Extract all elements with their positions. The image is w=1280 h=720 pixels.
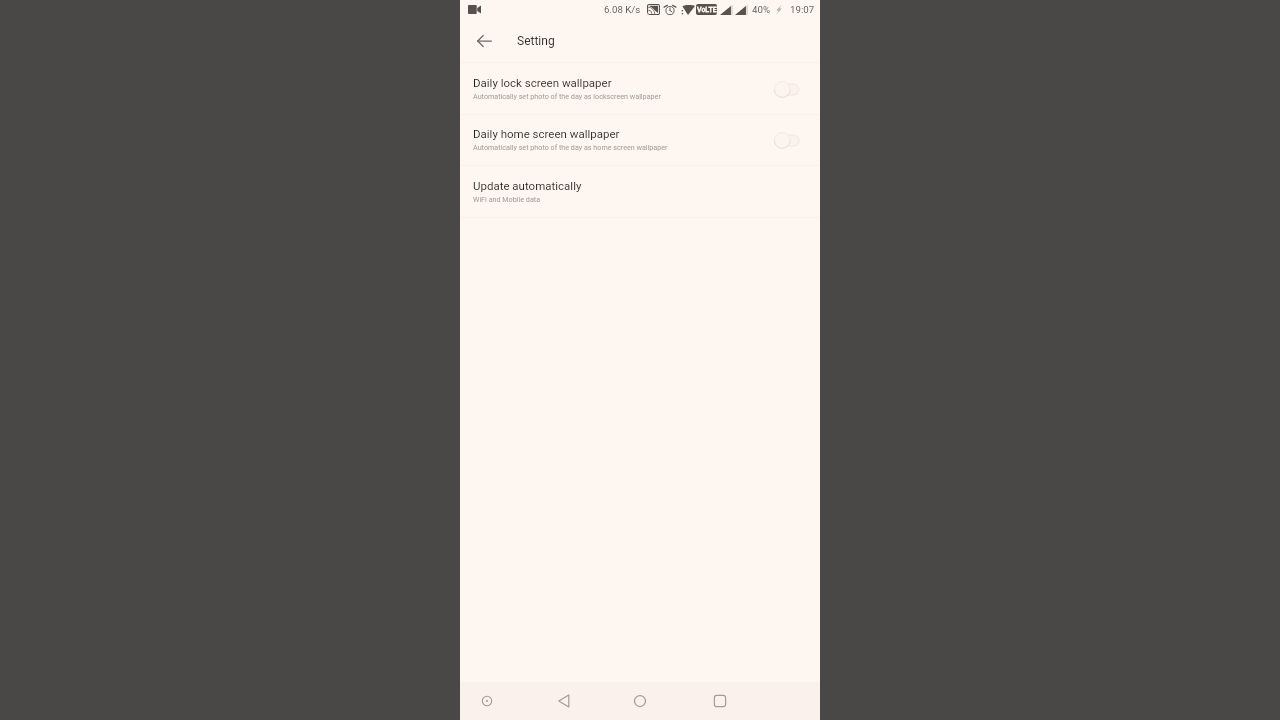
staticText: Daily lock screen wallpaper (473, 76, 612, 89)
staticText: VoLTE (697, 6, 717, 14)
staticText: 19:07 (790, 4, 815, 15)
button[interactable]: Daily home screen wallpaper (460, 115, 820, 165)
staticText: 6.08 K/s (604, 4, 641, 15)
button[interactable]: Back (554, 682, 574, 720)
staticText: Update automatically (473, 179, 582, 192)
button[interactable]: Assistant (477, 682, 497, 720)
button[interactable]: Toggle (768, 77, 804, 101)
button[interactable]: Toggle (768, 128, 804, 152)
staticText: Automatically set photo of the day as ho… (473, 143, 668, 151)
button[interactable]: Home (630, 682, 650, 720)
staticText: WiFi and Mobile data (473, 195, 541, 203)
button[interactable]: Update automatically (460, 166, 820, 217)
staticText: 40% (752, 4, 770, 15)
staticText: Automatically set photo of the day as lo… (473, 92, 661, 100)
button[interactable]: Back (465, 24, 499, 58)
button[interactable]: Recents (710, 682, 730, 720)
staticText: Daily home screen wallpaper (473, 127, 620, 140)
staticText: Setting (517, 34, 555, 48)
button[interactable]: Daily lock screen wallpaper (460, 63, 820, 114)
